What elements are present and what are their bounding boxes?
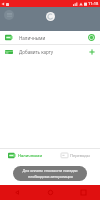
staticText: Переводы bbox=[70, 153, 90, 158]
button[interactable]: Наличными bbox=[0, 149, 50, 162]
button[interactable]: Добавить карту bbox=[0, 45, 100, 58]
staticText: 11:18 bbox=[88, 1, 99, 6]
other: Add card bbox=[88, 48, 95, 55]
staticText: Наличными bbox=[18, 153, 42, 158]
staticText: Наличными bbox=[19, 35, 88, 41]
button[interactable]: Переводы bbox=[50, 149, 100, 162]
button[interactable]: Menu bbox=[4, 10, 14, 20]
staticText: Добавить карту bbox=[19, 49, 88, 55]
staticText: Для оплаты стоимости поездки bbox=[22, 168, 78, 173]
button[interactable]: Наличными bbox=[0, 31, 100, 44]
staticText: необходима авторизация bbox=[28, 174, 73, 179]
